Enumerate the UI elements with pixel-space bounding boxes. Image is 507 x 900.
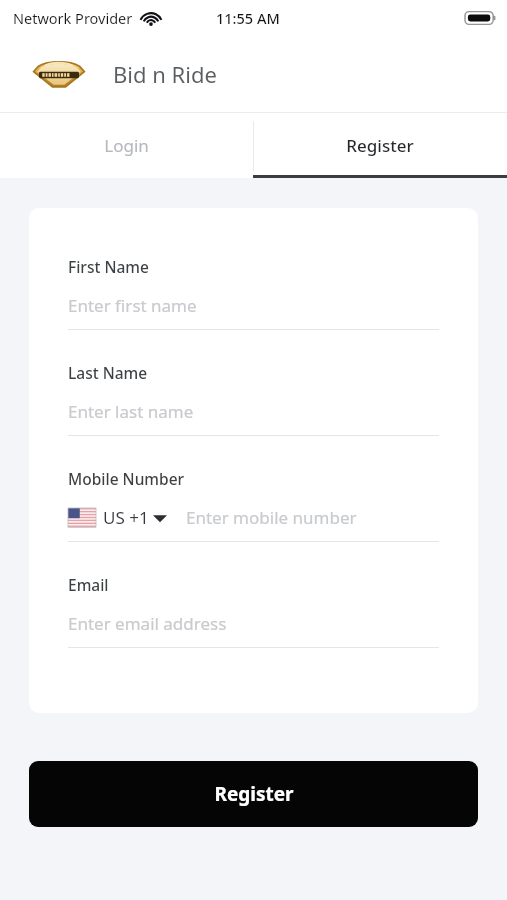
- button[interactable]: Enter last name: [68, 397, 439, 425]
- staticText: Last Name: [68, 362, 148, 383]
- staticText: US +1: [103, 506, 149, 529]
- staticText: 11:55 AM: [216, 8, 280, 28]
- button[interactable]: Enter first name: [68, 291, 439, 319]
- staticText: Mobile Number: [68, 468, 185, 489]
- button[interactable]: Register: [29, 761, 478, 827]
- staticText: Register: [346, 134, 414, 157]
- button[interactable]: Enter email address: [68, 609, 439, 637]
- button[interactable]: Register: [253, 113, 507, 178]
- staticText: First Name: [68, 256, 149, 277]
- staticText: Login: [104, 134, 149, 157]
- staticText: Register: [214, 781, 294, 807]
- staticText: Enter mobile number: [186, 506, 357, 529]
- staticText: Enter last name: [68, 400, 194, 423]
- staticText: Enter first name: [68, 294, 197, 317]
- staticText: Bid n Ride: [113, 59, 217, 89]
- staticText: Email: [68, 574, 109, 595]
- button[interactable]: Select country code: [68, 506, 167, 529]
- staticText: Network Provider: [13, 8, 133, 28]
- button[interactable]: Enter mobile number: [186, 506, 439, 529]
- staticText: Enter email address: [68, 612, 227, 635]
- button[interactable]: Login: [0, 113, 253, 178]
